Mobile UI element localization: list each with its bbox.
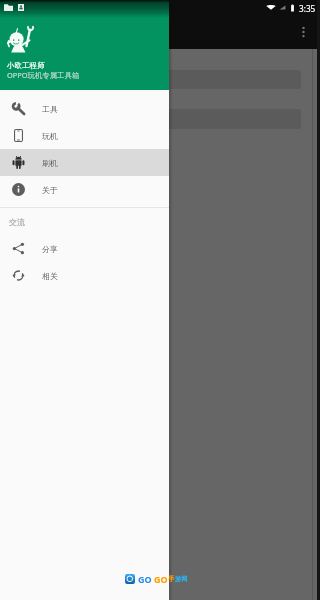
- button[interactable]: 刷机: [0, 149, 169, 176]
- button[interactable]: 相关: [0, 262, 169, 289]
- staticText: 工具: [42, 104, 58, 114]
- staticText: 手: [168, 575, 175, 583]
- staticText: GO: [154, 573, 168, 585]
- staticText: GO: [138, 573, 152, 585]
- staticText: 小欧工程师: [7, 61, 45, 70]
- button[interactable]: More options: [290, 18, 318, 46]
- staticText: OPPO玩机专属工具箱: [7, 70, 80, 80]
- button[interactable]: 玩机: [0, 122, 169, 149]
- button[interactable]: 关于: [0, 176, 169, 203]
- staticText: 关于: [42, 185, 58, 195]
- staticText: 3:35: [299, 3, 316, 14]
- staticText: 相关: [42, 271, 58, 281]
- button[interactable]: 分享: [0, 235, 169, 262]
- staticText: 玩机: [42, 131, 58, 141]
- staticText: 游网: [175, 575, 188, 583]
- staticText: 交流: [9, 217, 25, 227]
- button[interactable]: 工具: [0, 95, 169, 122]
- staticText: 刷机: [42, 158, 58, 168]
- staticText: 分享: [42, 244, 58, 254]
